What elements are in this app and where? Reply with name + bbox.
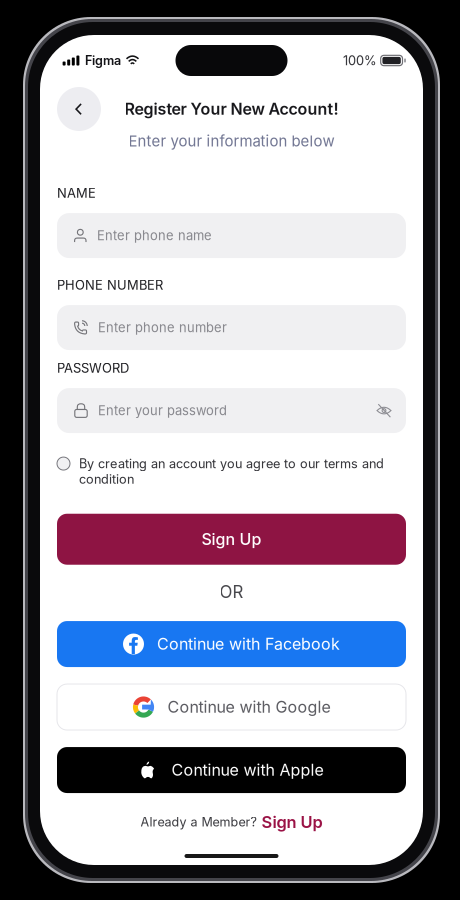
button[interactable]: Enter your password [57, 388, 406, 433]
staticText: Enter phone number [98, 320, 227, 335]
button[interactable]: Continue with Google [57, 684, 406, 730]
staticText: Register Your New Account! [124, 99, 338, 119]
button[interactable]: By creating an account you agree to our … [57, 456, 406, 487]
button[interactable]: Back [57, 87, 101, 131]
staticText: Already a Member? [140, 814, 256, 830]
staticText: PHONE NUMBER [57, 277, 163, 293]
button[interactable]: Continue with Facebook [57, 621, 406, 667]
button[interactable]: Enter phone number [57, 305, 406, 350]
staticText: Enter your password [98, 403, 227, 418]
staticText: Continue with Apple [171, 760, 323, 780]
staticText: By creating an account you agree to our … [79, 456, 384, 487]
staticText: Sign Up [201, 529, 261, 549]
staticText: NAME [57, 185, 96, 201]
staticText: PASSWORD [57, 360, 129, 376]
staticText: Continue with Facebook [157, 634, 340, 654]
button[interactable]: Enter phone name [57, 213, 406, 258]
staticText: Sign Up [261, 812, 322, 832]
button[interactable]: Continue with Apple [57, 747, 406, 793]
staticText: 100% [343, 53, 377, 68]
staticText: Enter your information below [128, 132, 334, 150]
staticText: OR [219, 582, 243, 602]
button[interactable]: Sign Up [57, 514, 406, 565]
staticText: Figma [85, 53, 121, 68]
button[interactable]: Already a Member? [140, 812, 322, 832]
staticText: Continue with Google [167, 697, 330, 717]
staticText: Enter phone name [97, 228, 212, 243]
